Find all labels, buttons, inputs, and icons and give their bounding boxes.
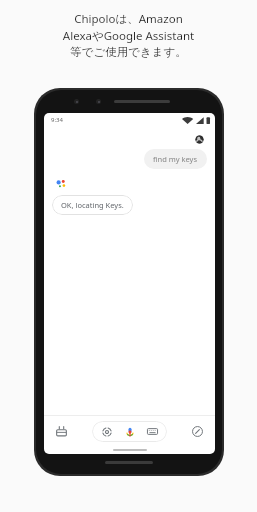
button[interactable]: Snapshot: [53, 423, 70, 440]
staticText: OK, locating Keys.: [61, 200, 124, 210]
staticText: 9:34: [51, 116, 63, 124]
button[interactable]: find my keys: [144, 149, 207, 169]
staticText: find my keys: [153, 154, 198, 164]
button[interactable]: OK, locating Keys.: [52, 195, 133, 215]
button[interactable]: Keyboard: [145, 424, 160, 439]
button[interactable]: Voice search: [122, 424, 137, 439]
button[interactable]: Explore: [189, 423, 206, 440]
staticText: Chipoloは、Amazon AlexaやGoogle Assistant 等…: [0, 11, 257, 59]
button[interactable]: Account: [195, 135, 204, 144]
button[interactable]: Google Lens: [99, 424, 114, 439]
